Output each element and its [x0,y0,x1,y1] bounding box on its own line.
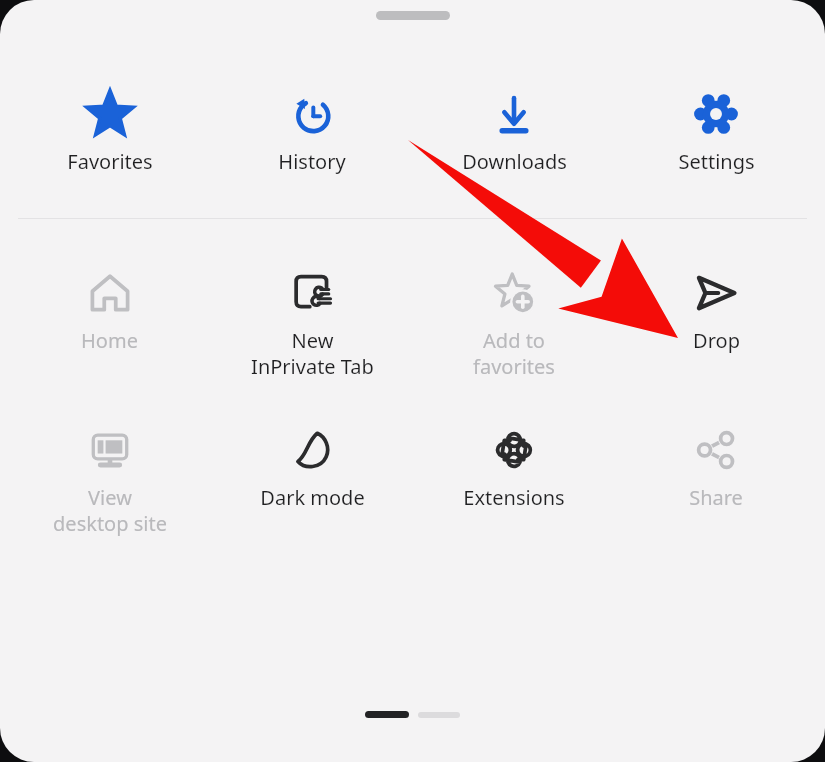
staticText: Home [81,327,138,354]
button[interactable]: Share [615,418,817,511]
button[interactable]: Home [8,261,211,354]
staticText: View desktop site [53,484,167,537]
button[interactable]: Settings [615,82,817,175]
button[interactable]: New InPrivate Tab [211,261,413,380]
button[interactable]: Dark mode [211,418,413,511]
staticText: Share [689,484,743,511]
staticText: Add to favorites [473,327,555,380]
button[interactable]: Drop [615,261,817,354]
staticText: Favorites [67,148,153,175]
button[interactable]: Downloads [413,82,615,175]
staticText: Extensions [463,484,565,511]
staticText: Drop [693,327,740,354]
staticText: History [278,148,346,175]
button[interactable]: Favorites [8,82,211,175]
button[interactable]: History [211,82,413,175]
button[interactable]: Extensions [413,418,615,511]
button[interactable]: Add to favorites [413,261,615,380]
staticText: Settings [678,148,755,175]
staticText: Downloads [462,148,567,175]
staticText: Dark mode [260,484,365,511]
staticText: New InPrivate Tab [251,327,374,380]
button[interactable]: View desktop site [8,418,211,537]
